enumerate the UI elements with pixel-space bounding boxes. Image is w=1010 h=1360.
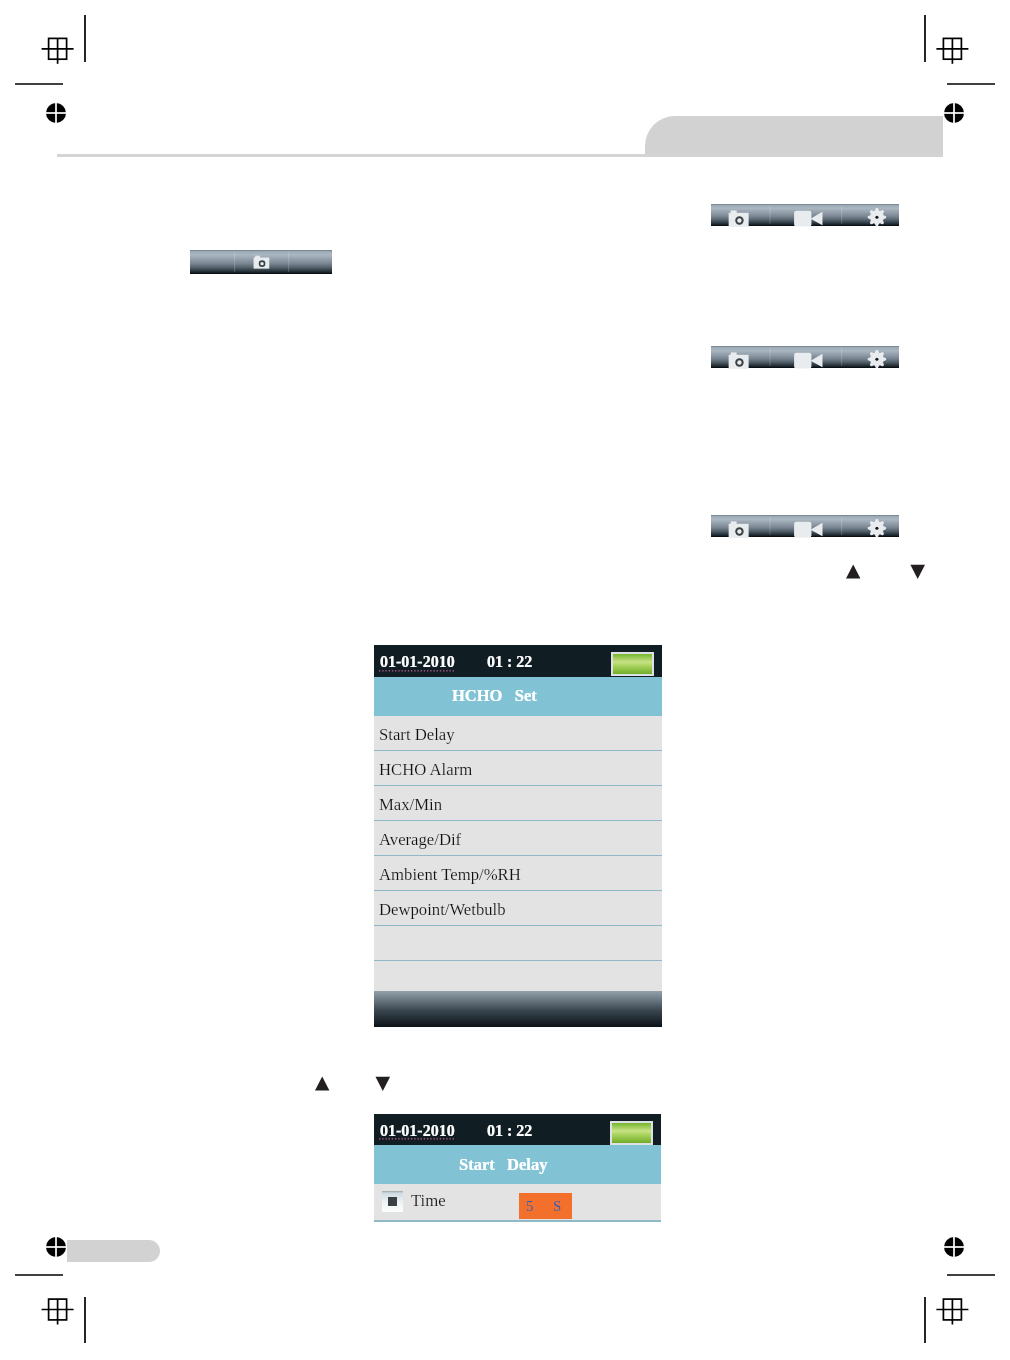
staticText: Time: [411, 1191, 446, 1209]
staticText: Start Delay: [459, 1155, 548, 1173]
staticText: Ambient Temp/%RH: [379, 865, 521, 883]
staticText: Start Delay: [379, 725, 455, 743]
staticText: 01 : 22: [487, 653, 533, 671]
staticText: Max/Min: [379, 795, 443, 813]
button[interactable]: Ambient Temp/%RH: [374, 856, 662, 891]
staticText: Dewpoint/Wetbulb: [379, 900, 506, 918]
button[interactable]: Camera controls: [711, 346, 899, 368]
staticText: HCHO Alarm: [379, 760, 473, 778]
button[interactable]: Max/Min: [374, 786, 662, 821]
button[interactable]: Camera controls: [190, 250, 332, 274]
button[interactable]: Up and down buttons: [315, 1075, 423, 1095]
button[interactable]: Camera controls: [711, 515, 899, 537]
button[interactable]: Dewpoint/Wetbulb: [374, 891, 662, 926]
button[interactable]: Start Delay: [374, 716, 662, 751]
button[interactable]: Camera controls: [711, 204, 899, 226]
staticText: Average/Dif: [379, 830, 462, 848]
staticText: 5: [526, 1198, 534, 1215]
button[interactable]: Up and down buttons: [846, 563, 954, 583]
staticText: 01 : 22: [487, 1122, 533, 1140]
staticText: S: [553, 1198, 562, 1215]
button[interactable]: Average/Dif: [374, 821, 662, 856]
staticText: HCHO Set: [452, 686, 537, 704]
button[interactable]: [374, 926, 662, 961]
staticText: 01-01-2010: [380, 1122, 455, 1140]
staticText: 01-01-2010: [380, 653, 455, 671]
button[interactable]: Time: [374, 1184, 661, 1222]
button[interactable]: HCHO Alarm: [374, 751, 662, 786]
